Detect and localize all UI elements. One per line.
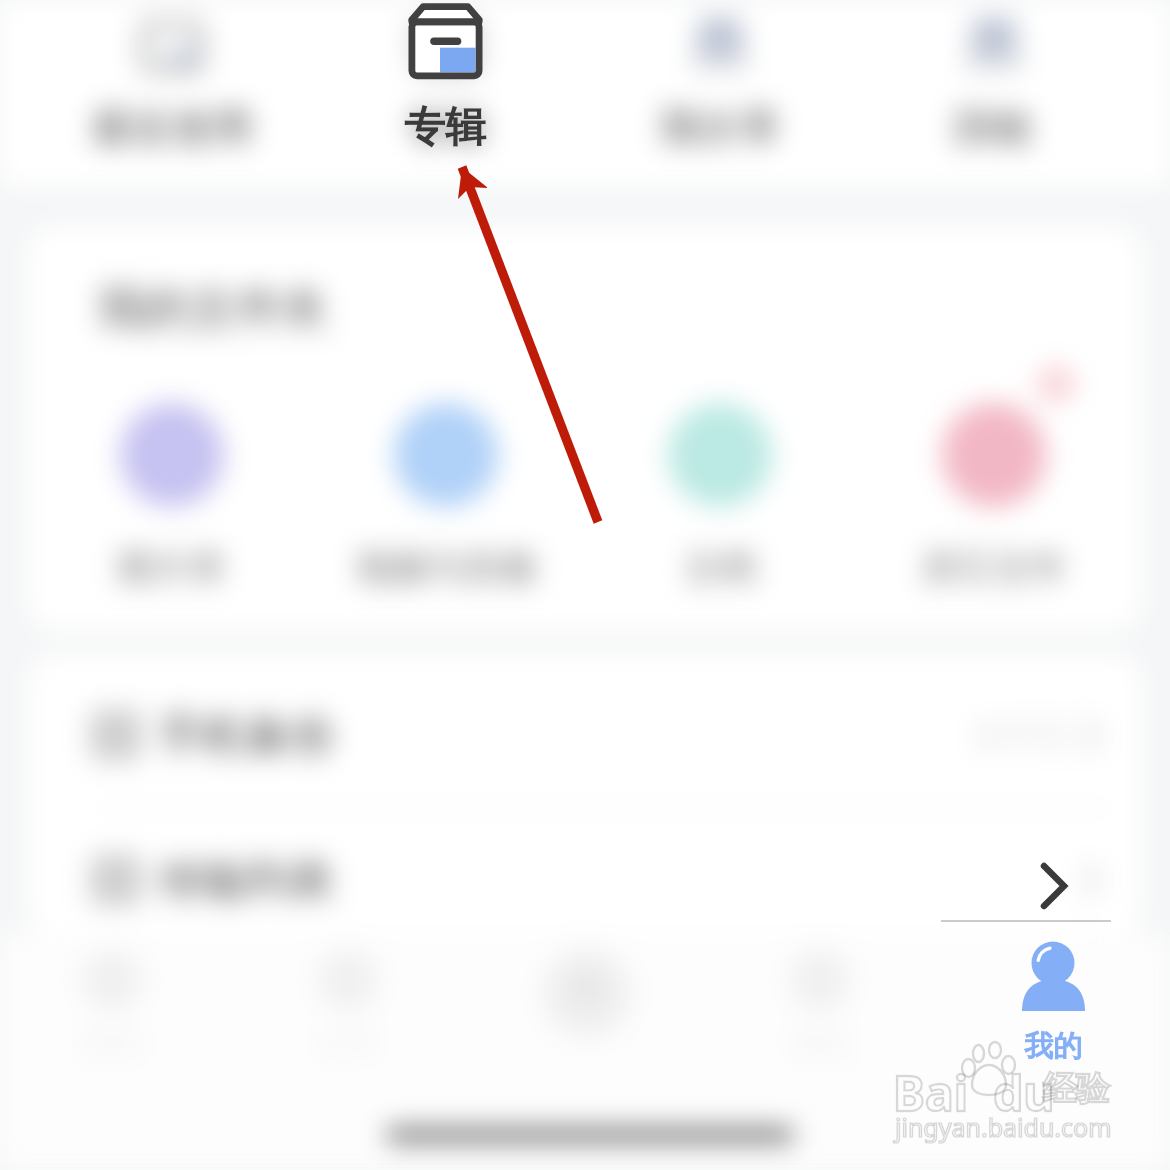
staticText: 最近使用 [92, 102, 252, 152]
staticText: jingyan.baidu.com [895, 1110, 1112, 1144]
staticText: 经验 [1043, 1068, 1109, 1110]
staticText: Bai [893, 1060, 969, 1125]
staticText: 回收 [954, 102, 1034, 152]
staticText: 其它文件 [922, 545, 1066, 590]
staticText: 图片库 [118, 545, 226, 590]
staticText: 专辑 [404, 102, 486, 154]
staticText: 我的文件夹 [98, 280, 328, 338]
staticText: du [993, 1060, 1055, 1125]
staticText: 专辑 [406, 102, 486, 152]
button[interactable]: 专辑 [345, 96, 545, 160]
staticText: 我分享 [660, 102, 780, 152]
button[interactable]: 我的 [1000, 932, 1106, 1072]
staticText: 手机备份 [158, 708, 334, 763]
staticText: 传输列表 [158, 853, 334, 908]
staticText: 文档 [684, 545, 756, 590]
staticText: 我的 [1024, 1028, 1082, 1064]
button[interactable]: Next [1020, 845, 1088, 927]
staticText: 视频与音频 [356, 545, 536, 590]
